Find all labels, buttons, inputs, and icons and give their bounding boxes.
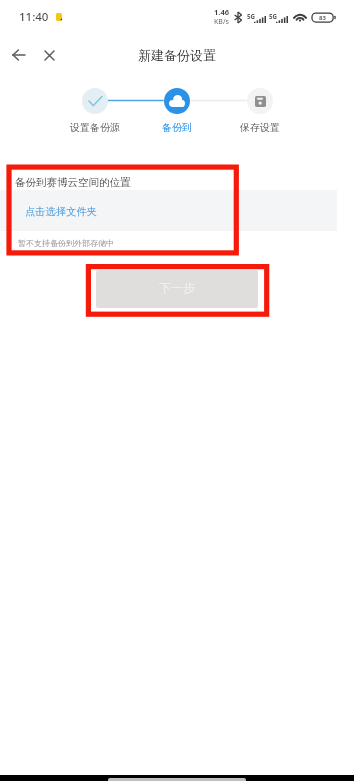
staticText: 备份到 [162, 121, 192, 134]
button[interactable]: Back [6, 42, 32, 68]
staticText: 5G [247, 12, 256, 20]
staticText: 暂不支持备份到外部存储中 [18, 238, 114, 248]
staticText: 83 [319, 14, 326, 22]
staticText: 新建备份设置 [138, 47, 216, 63]
staticText: 1.46 [214, 7, 229, 17]
staticText: 5G [269, 12, 278, 20]
staticText: KB/s [214, 17, 229, 27]
button[interactable]: Close [36, 42, 62, 68]
staticText: 点击选择文件夹 [25, 205, 98, 218]
staticText: 下一步 [159, 280, 195, 295]
staticText: 设置备份源 [70, 121, 120, 134]
button[interactable]: 点击选择文件夹 [0, 190, 337, 231]
staticText: 11:40 [19, 9, 49, 25]
staticText: 保存设置 [240, 121, 280, 134]
staticText: 备份到赛博云空间的位置 [15, 176, 131, 189]
